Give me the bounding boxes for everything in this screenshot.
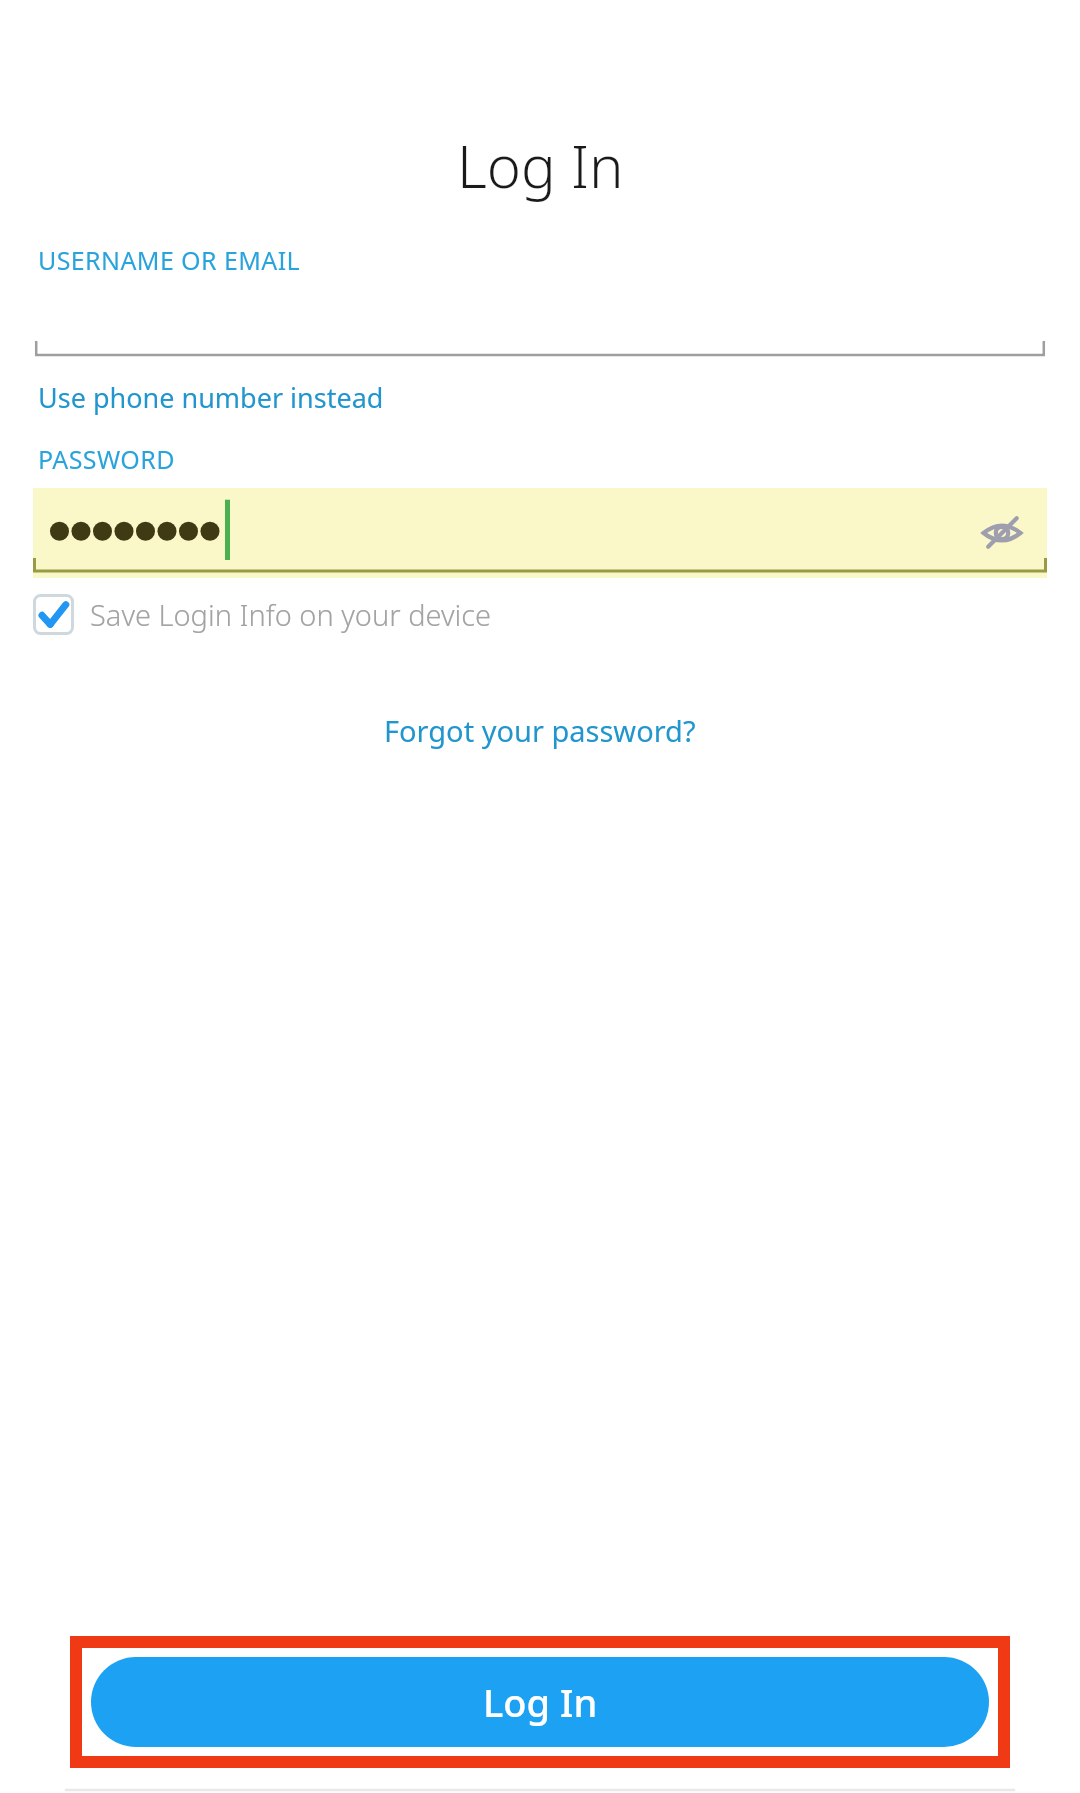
staticText: Log In — [483, 1676, 598, 1728]
button[interactable]: Log In — [91, 1657, 989, 1747]
button[interactable]: Hide password — [973, 504, 1031, 562]
button[interactable]: Use phone number instead — [38, 379, 384, 416]
staticText: USERNAME OR EMAIL — [38, 243, 301, 277]
staticText: Forgot your password? — [384, 711, 696, 750]
staticText: PASSWORD — [38, 442, 175, 476]
button[interactable]: Save Login Info on your device — [33, 594, 492, 635]
button[interactable]: Forgot your password? — [384, 711, 696, 750]
staticText: Log In — [457, 126, 624, 205]
staticText: Use phone number instead — [38, 379, 384, 416]
staticText: Save Login Info on your device — [90, 595, 492, 634]
button[interactable]: Hide password — [33, 488, 1047, 578]
button[interactable] — [35, 323, 1045, 357]
